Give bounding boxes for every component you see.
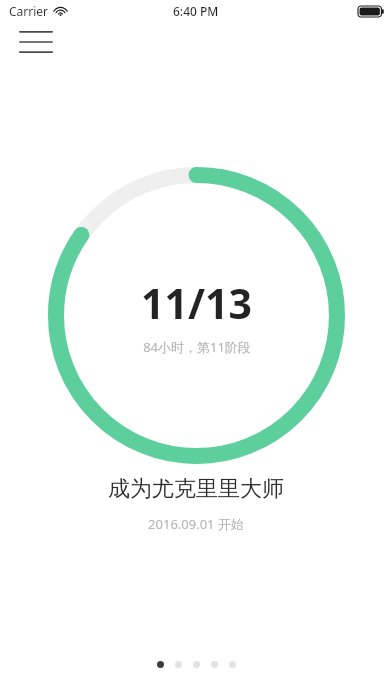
- button[interactable]: [223, 657, 241, 671]
- staticText: 6:40 PM: [173, 3, 219, 19]
- button[interactable]: [151, 657, 169, 671]
- button[interactable]: [205, 657, 223, 671]
- staticText: Carrier: [9, 3, 49, 19]
- button[interactable]: Menu: [10, 22, 62, 62]
- staticText: 成为尤克里里大师: [108, 475, 284, 503]
- staticText: 2016.09.01 开始: [148, 515, 244, 533]
- button[interactable]: [187, 657, 205, 671]
- staticText: 11/13: [141, 275, 252, 331]
- button[interactable]: [169, 657, 187, 671]
- staticText: 84小时，第11阶段: [143, 338, 251, 356]
